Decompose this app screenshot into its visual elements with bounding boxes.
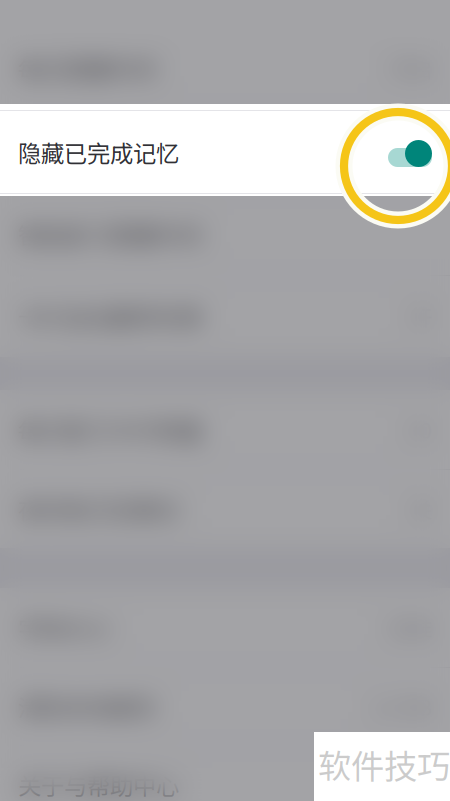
staticText: 隐藏已完成记忆	[18, 135, 179, 169]
staticText: 卡片自动翻转效果	[18, 300, 202, 333]
button[interactable]: 每次复习卡片数量	[0, 390, 450, 470]
staticText: 软件技巧	[318, 740, 450, 788]
button[interactable]: 夜间免打扰模式	[0, 470, 450, 548]
button[interactable]: 字体大小	[0, 588, 450, 668]
staticText: 关于与帮助中心	[18, 768, 179, 801]
button[interactable]: 关于与帮助中心	[0, 746, 450, 801]
staticText: 每次复习卡片数量	[18, 413, 202, 446]
button[interactable]: 卡片自动翻转效果	[0, 276, 450, 357]
button[interactable]: 清除本地缓存	[0, 668, 450, 746]
staticText: 智能复习提醒时间	[18, 217, 202, 251]
staticText: 夜间免打扰模式	[18, 492, 179, 526]
staticText: 每日提醒时间	[18, 51, 156, 85]
button[interactable]: 隐藏已完成记忆	[0, 111, 450, 193]
button[interactable]: 智能复习提醒时间	[0, 193, 450, 276]
button[interactable]: 隐藏已完成记忆	[0, 110, 450, 193]
staticText: 清除本地缓存	[18, 690, 156, 723]
button[interactable]: 每日提醒时间	[0, 27, 450, 110]
staticText: 隐藏已完成记忆	[18, 134, 179, 168]
staticText: 字体大小	[18, 611, 110, 644]
